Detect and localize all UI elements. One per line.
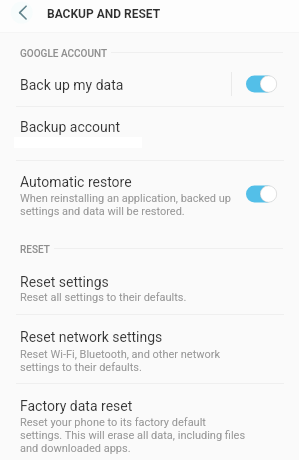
button[interactable]: Navigate up	[6, 0, 34, 28]
staticText: When reinstalling an application, backed…	[20, 192, 232, 218]
button[interactable]: Toggle	[245, 74, 279, 94]
button[interactable]: Factory data reset	[0, 384, 299, 460]
button[interactable]: Reset network settings	[0, 315, 299, 383]
staticText: RESET	[20, 244, 50, 256]
staticText: Backup account	[20, 119, 121, 135]
staticText: BACKUP AND RESET	[47, 7, 161, 21]
staticText: Reset network settings	[20, 329, 163, 345]
staticText: Reset Wi-Fi, Bluetooth, and other networ…	[20, 348, 221, 374]
staticText: Reset your phone to its factory default …	[20, 416, 246, 455]
staticText: Back up my data	[20, 77, 124, 93]
staticText: Factory data reset	[20, 398, 133, 414]
button[interactable]: Backup account	[0, 107, 299, 160]
button[interactable]: Reset settings	[0, 262, 299, 314]
staticText: Reset all settings to their defaults.	[20, 291, 187, 304]
button[interactable]: Toggle	[245, 184, 279, 204]
button[interactable]: Back up my data	[0, 63, 299, 106]
button[interactable]: Automatic restore	[0, 161, 299, 222]
staticText: Reset settings	[20, 274, 109, 290]
staticText: GOOGLE ACCOUNT	[20, 48, 108, 60]
staticText: Automatic restore	[20, 174, 132, 190]
